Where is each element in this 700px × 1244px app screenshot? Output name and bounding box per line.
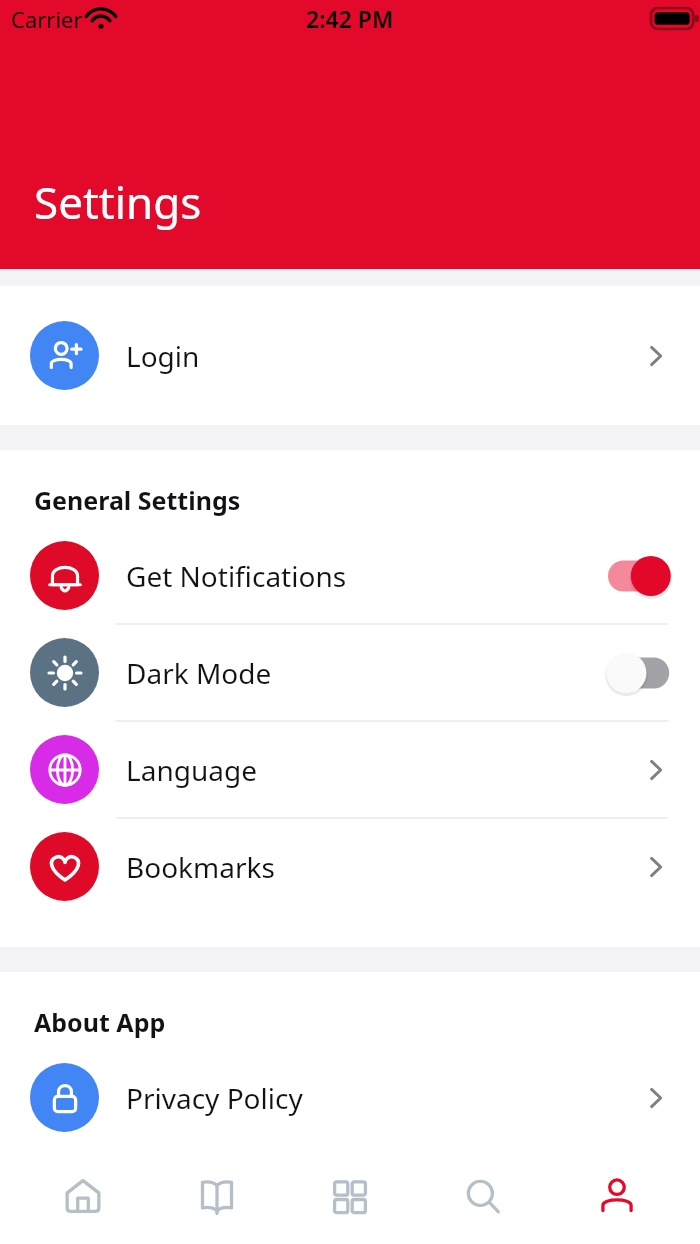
button[interactable]: Search [433, 1148, 533, 1244]
staticText: Bookmarks [126, 848, 275, 886]
button[interactable]: Get Notifications [0, 528, 700, 623]
button[interactable]: Open Login [636, 336, 676, 376]
button[interactable]: Profile [567, 1148, 667, 1244]
button[interactable]: Bookmarks [0, 819, 700, 914]
staticText: 2:42 PM [306, 3, 394, 34]
staticText: Dark Mode [126, 654, 272, 692]
staticText: Language [126, 751, 257, 789]
button[interactable]: Categories [300, 1148, 400, 1244]
button[interactable]: Open Privacy Policy [636, 1078, 676, 1118]
staticText: General Settings [34, 483, 241, 517]
staticText: Login [126, 337, 200, 375]
button[interactable]: Toggle off [608, 651, 676, 695]
staticText: About App [34, 1005, 166, 1039]
button[interactable]: Home [33, 1148, 133, 1244]
button[interactable]: Toggle on [608, 554, 676, 598]
button[interactable]: Language [0, 722, 700, 817]
button[interactable]: Open Language [636, 750, 676, 790]
button[interactable]: Library [167, 1148, 267, 1244]
button[interactable]: Login [0, 286, 700, 425]
staticText: Settings [34, 172, 202, 232]
staticText: Privacy Policy [126, 1079, 303, 1117]
button[interactable]: Dark Mode [0, 625, 700, 720]
button[interactable]: Privacy Policy [0, 1050, 700, 1145]
staticText: Carrier [11, 4, 83, 34]
button[interactable]: Open Bookmarks [636, 847, 676, 887]
staticText: Get Notifications [126, 557, 347, 595]
